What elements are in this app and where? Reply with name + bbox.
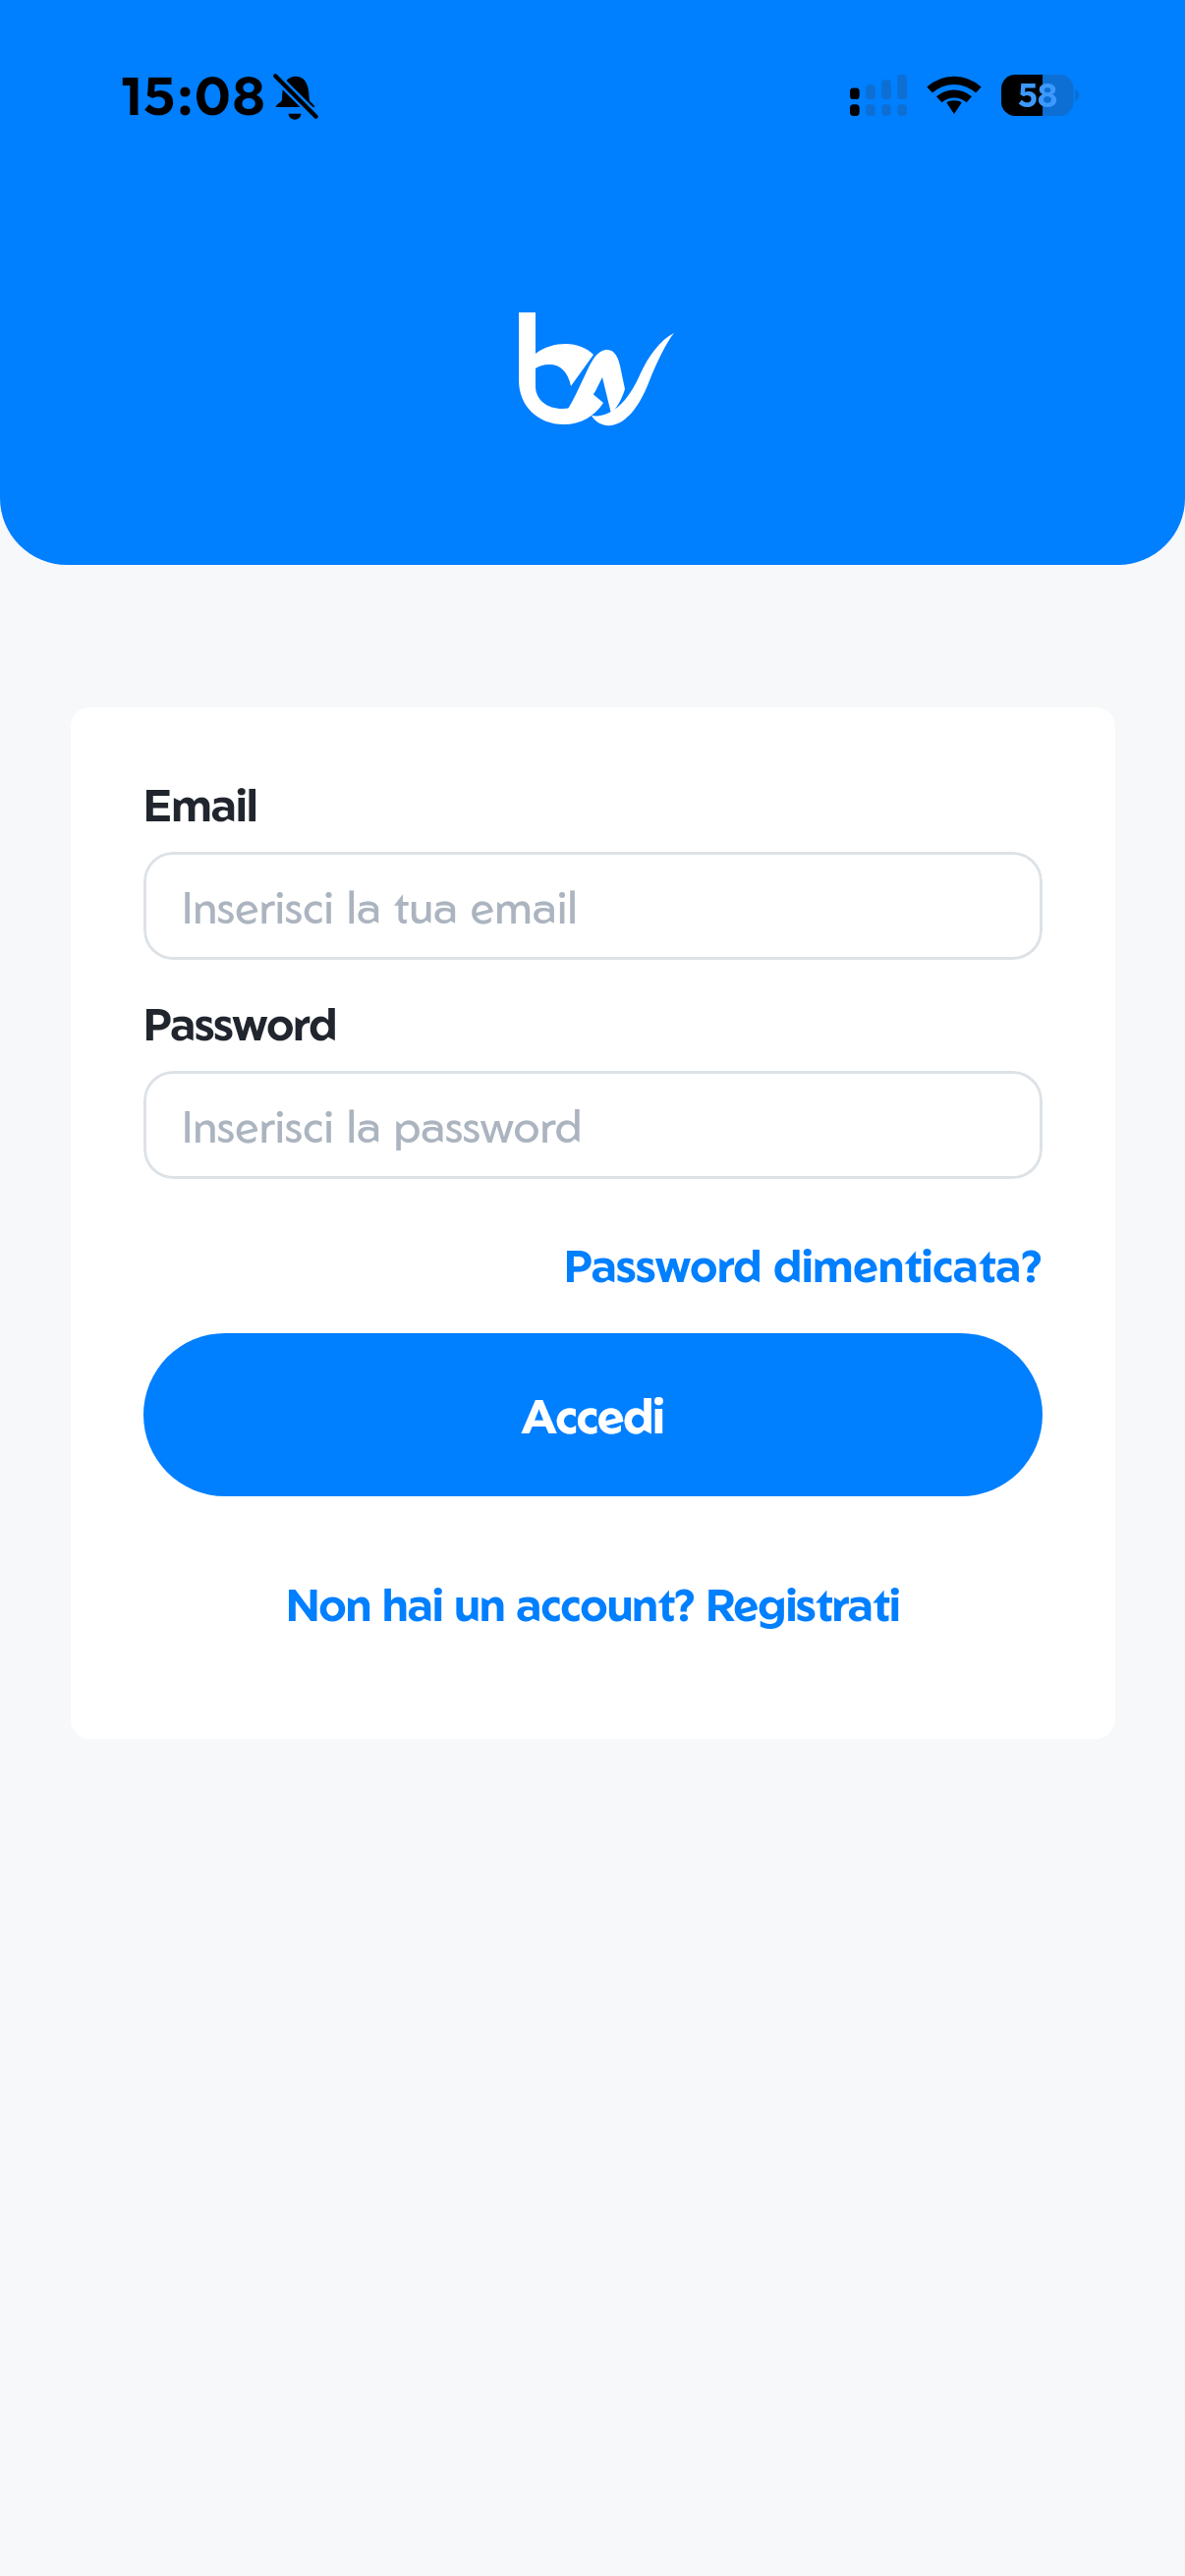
staticText: Email	[143, 776, 257, 831]
other: Battery 58 percent	[1001, 75, 1081, 116]
button[interactable]: Accedi	[143, 1333, 1043, 1496]
other: bw logo	[515, 308, 680, 426]
staticText: Accedi	[522, 1385, 664, 1444]
staticText: Inserisci la tua email	[182, 878, 578, 933]
other: Notifications silenced	[272, 74, 317, 119]
staticText: Inserisci la password	[182, 1097, 583, 1152]
button[interactable]: Password dimenticata?	[564, 1237, 1043, 1292]
staticText: Non hai un account? Registrati	[286, 1576, 900, 1631]
staticText: Password	[143, 995, 337, 1050]
staticText: 58	[1018, 75, 1057, 115]
other: Wi-Fi	[932, 77, 976, 114]
staticText: 15:08	[122, 61, 267, 127]
button[interactable]: Inserisci la tua email	[143, 852, 1043, 960]
other: Cellular signal	[850, 75, 907, 116]
button[interactable]: Inserisci la password	[143, 1071, 1043, 1179]
staticText: Password dimenticata?	[564, 1237, 1043, 1292]
button[interactable]: Non hai un account? Registrati	[286, 1576, 900, 1631]
